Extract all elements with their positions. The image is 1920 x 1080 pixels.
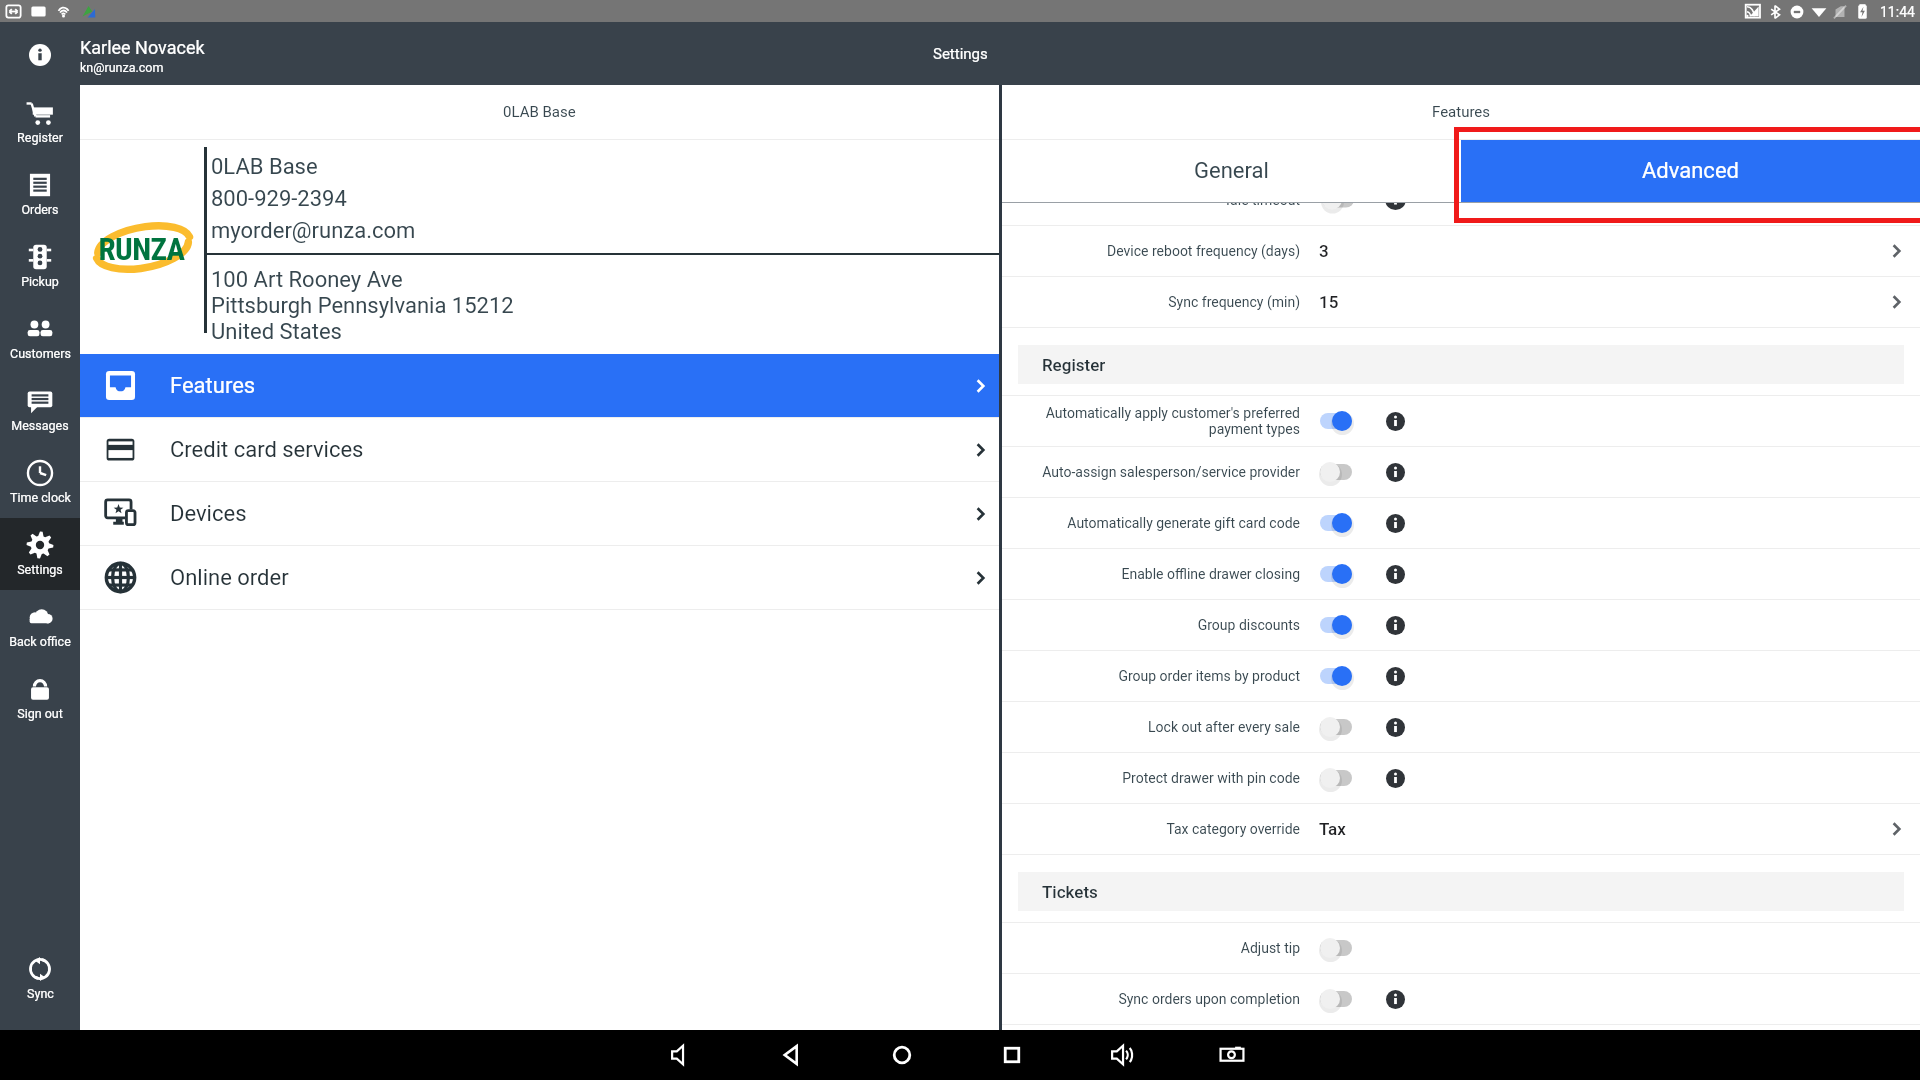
staticText: Orders xyxy=(21,202,59,217)
button[interactable]: Info xyxy=(1385,513,1405,533)
staticText: RUNZA xyxy=(98,231,185,267)
staticText: Lock out after every sale xyxy=(1148,719,1300,735)
button[interactable]: Register xyxy=(0,86,80,158)
staticText: Customers xyxy=(10,346,71,361)
button[interactable]: Pickup xyxy=(0,230,80,302)
staticText: kn@runza.com xyxy=(80,60,164,75)
button[interactable]: Sync orders upon completion xyxy=(1320,982,1352,1016)
staticText: 800-929-2394 xyxy=(211,186,347,212)
button[interactable]: Tax category override xyxy=(1002,804,1920,854)
staticText: Protect drawer with pin code xyxy=(1122,770,1300,786)
button[interactable]: Info xyxy=(1385,666,1405,686)
staticText: General xyxy=(1194,158,1269,184)
staticText: Adjust tip xyxy=(1240,940,1300,956)
button[interactable]: Enable offline drawer closing xyxy=(1002,549,1920,599)
button[interactable]: Info xyxy=(1385,462,1405,482)
button[interactable]: Auto-assign salesperson/service provider xyxy=(1320,455,1352,489)
staticText: Sync xyxy=(27,986,54,1001)
button[interactable]: Adjust tip xyxy=(1002,923,1920,973)
staticText: Online order xyxy=(170,565,289,591)
button[interactable]: Group order items by product xyxy=(1320,659,1352,693)
staticText: Settings xyxy=(17,562,63,577)
button[interactable]: Sign out xyxy=(0,662,80,734)
button[interactable]: Info xyxy=(1385,717,1405,737)
button[interactable]: Advanced xyxy=(1461,140,1920,202)
button[interactable]: Automatically apply customer's preferred… xyxy=(1320,404,1352,438)
button[interactable]: Protect drawer with pin code xyxy=(1320,761,1352,795)
button[interactable]: Enable offline drawer closing xyxy=(1320,557,1352,591)
staticText: 0LAB Base xyxy=(503,103,576,121)
button[interactable]: Lock out after every sale xyxy=(1002,702,1920,752)
staticText: Auto-assign salesperson/service provider xyxy=(1042,464,1300,480)
button[interactable]: Info xyxy=(1385,989,1405,1009)
button[interactable]: Device reboot frequency (days) xyxy=(1002,226,1920,276)
button[interactable]: Back office xyxy=(0,590,80,662)
button[interactable]: Sync frequency (min) xyxy=(1002,277,1920,327)
button[interactable]: Group discounts xyxy=(1002,600,1920,650)
staticText: Settings xyxy=(933,45,988,63)
staticText: Sync frequency (min) xyxy=(1168,294,1300,310)
staticText: Features xyxy=(170,373,256,399)
button[interactable]: Sync orders upon completion xyxy=(1002,974,1920,1024)
button[interactable]: Credit card services xyxy=(80,418,999,481)
button[interactable]: Online order xyxy=(80,546,999,609)
button[interactable]: Group order items by product xyxy=(1002,651,1920,701)
staticText: 100 Art Rooney Ave xyxy=(211,267,403,293)
staticText: 0LAB Base xyxy=(211,154,318,180)
button[interactable]: Automatically generate gift card code xyxy=(1002,498,1920,548)
staticText: United States xyxy=(211,319,342,345)
staticText: Automatically generate gift card code xyxy=(1067,515,1300,531)
staticText: Credit card services xyxy=(170,437,364,463)
staticText: Tax xyxy=(1319,819,1346,839)
staticText: Tickets xyxy=(1042,882,1098,902)
staticText: Messages xyxy=(11,418,69,433)
button[interactable]: Group discounts xyxy=(1320,608,1352,642)
button[interactable]: Features xyxy=(80,354,999,417)
button[interactable]: Automatically generate gift card code xyxy=(1320,506,1352,540)
staticText: Devices xyxy=(170,501,247,527)
button[interactable]: Orders xyxy=(0,158,80,230)
button[interactable]: Info xyxy=(1385,615,1405,635)
staticText: Device reboot frequency (days) xyxy=(1107,243,1300,259)
button[interactable]: General xyxy=(1002,140,1461,202)
button[interactable]: Messages xyxy=(0,374,80,446)
button[interactable]: Info xyxy=(1385,564,1405,584)
button[interactable]: Info xyxy=(0,22,80,85)
staticText: Advanced xyxy=(1642,158,1739,184)
staticText: Group discounts xyxy=(1197,617,1300,633)
staticText: 3 xyxy=(1319,241,1329,261)
staticText: Pickup xyxy=(21,274,59,289)
staticText: Sign out xyxy=(17,706,63,721)
button[interactable]: Back xyxy=(770,1033,814,1077)
button[interactable]: Devices xyxy=(80,482,999,545)
staticText: Automatically apply customer's preferred… xyxy=(1045,405,1300,437)
button[interactable]: Protect drawer with pin code xyxy=(1002,753,1920,803)
staticText: Group order items by product xyxy=(1118,668,1300,684)
staticText: Enable offline drawer closing xyxy=(1121,566,1300,582)
button[interactable]: Recents xyxy=(990,1033,1034,1077)
button[interactable]: Auto-assign salesperson/service provider xyxy=(1002,447,1920,497)
button[interactable]: Time clock xyxy=(0,446,80,518)
button[interactable]: Screenshot xyxy=(1210,1033,1254,1077)
button[interactable]: Lock out after every sale xyxy=(1320,710,1352,744)
staticText: Tax category override xyxy=(1166,821,1300,837)
staticText: Idle timeout xyxy=(1226,202,1300,208)
button[interactable]: Info xyxy=(1385,411,1405,431)
staticText: Back office xyxy=(9,634,71,649)
button[interactable]: Automatically apply customer's preferred… xyxy=(1002,396,1920,446)
staticText: Karlee Novacek xyxy=(80,37,205,58)
staticText: Pittsburgh Pennsylvania 15212 xyxy=(211,293,514,319)
staticText: myorder@runza.com xyxy=(211,218,416,244)
button[interactable]: Adjust tip xyxy=(1320,931,1352,965)
button[interactable]: Sync xyxy=(0,942,80,1014)
staticText: 11:44 xyxy=(1880,4,1915,20)
staticText: Time clock xyxy=(10,490,71,505)
button[interactable]: Home xyxy=(880,1033,924,1077)
button[interactable]: Customers xyxy=(0,302,80,374)
button[interactable]: Volume up xyxy=(1100,1033,1144,1077)
staticText: Features xyxy=(1432,103,1491,121)
button[interactable]: Volume down xyxy=(660,1033,704,1077)
button[interactable]: Info xyxy=(1385,768,1405,788)
button[interactable]: Settings xyxy=(0,518,80,590)
staticText: Sync orders upon completion xyxy=(1118,991,1300,1007)
